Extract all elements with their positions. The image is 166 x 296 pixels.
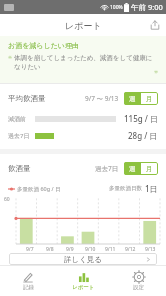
staticText: 過去7日 [95, 164, 119, 173]
staticText: 9/7 〜 9/13 [85, 94, 119, 103]
staticText: 週 [129, 165, 136, 173]
staticText: 60 [4, 196, 10, 203]
staticText: お酒を減らしたい理由 [8, 41, 79, 50]
staticText: 月 [146, 95, 153, 103]
staticText: 詳しく見る [64, 255, 103, 264]
staticText: 9/13 [145, 246, 156, 253]
button[interactable]: 記録 [0, 266, 56, 296]
staticText: 減酒前 [8, 115, 26, 123]
staticText: 9/9 [66, 246, 74, 253]
staticText: 記録 [23, 284, 34, 291]
staticText: 115g / 日 [124, 113, 158, 124]
staticText: 9/11 [105, 246, 116, 253]
staticText: 午前 9:00 [131, 2, 163, 12]
staticText: 多量飲酒日数 [109, 185, 142, 192]
staticText: 週 [129, 95, 136, 103]
staticText: 9/7 [26, 246, 34, 253]
staticText: 100% [110, 4, 123, 11]
staticText: レポート [65, 20, 102, 31]
staticText: 1日 [145, 183, 158, 194]
staticText: 多量飲酒 60g / 日 [17, 185, 61, 193]
staticText: レポート [72, 284, 95, 291]
button[interactable]: 週 [124, 162, 141, 175]
staticText: 設定 [133, 284, 144, 291]
staticText: 体調を崩してしまったため、減酒をして健康になりたい [14, 54, 158, 70]
button[interactable]: 詳しく見る [9, 253, 157, 265]
button[interactable]: 週 [124, 92, 141, 105]
staticText: 28g / 日 [128, 130, 158, 141]
button[interactable]: 月 [141, 162, 158, 175]
button[interactable]: レポート [56, 266, 111, 296]
staticText: 月 [146, 165, 153, 173]
staticText: 過去7日 [8, 132, 30, 140]
staticText: ❞ [154, 70, 158, 78]
staticText: 平均飲酒量 [8, 94, 46, 103]
staticText: 9/8 [46, 246, 54, 253]
staticText: ❝ [8, 55, 12, 63]
button[interactable]: Share [144, 14, 166, 36]
staticText: 飲酒量 [8, 164, 31, 173]
button[interactable]: 月 [141, 92, 158, 105]
staticText: 9/12 [125, 246, 136, 253]
button[interactable]: 設定 [111, 266, 166, 296]
staticText: 9/10 [85, 246, 96, 253]
